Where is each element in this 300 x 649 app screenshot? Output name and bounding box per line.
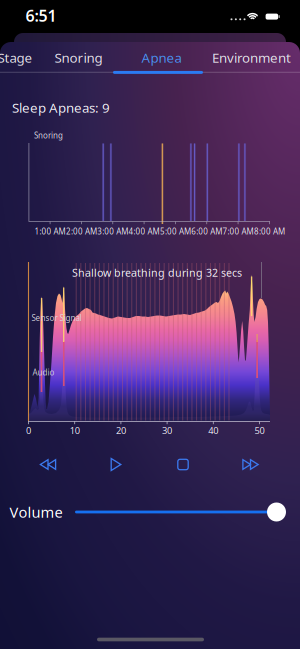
staticText: 2:00 AM xyxy=(66,226,97,237)
staticText: Snoring xyxy=(34,130,63,141)
button[interactable]: Fast Forward xyxy=(243,460,258,469)
staticText: 40 xyxy=(208,424,218,437)
staticText: 3:00 AM xyxy=(97,226,128,237)
button[interactable]: Play xyxy=(111,458,121,470)
staticText: 4:00 AM xyxy=(129,226,160,237)
button[interactable]: Rewind xyxy=(40,460,56,469)
staticText: Sensor Signal xyxy=(31,313,81,323)
staticText: Stage xyxy=(0,49,32,66)
staticText: 6:51 xyxy=(25,5,56,26)
staticText: 8:00 AM xyxy=(254,226,285,237)
staticText: 6:00 AM xyxy=(191,226,222,237)
button[interactable]: Snoring xyxy=(54,49,102,66)
staticText: 5:00 AM xyxy=(160,226,191,237)
staticText: Shallow breathing during 32 secs xyxy=(72,265,242,280)
staticText: 7:00 AM xyxy=(223,226,254,237)
staticText: Snoring xyxy=(54,49,102,66)
staticText: 0 xyxy=(26,424,31,437)
button[interactable]: Stage xyxy=(0,49,32,66)
staticText: Apnea xyxy=(141,49,181,66)
staticText: Volume xyxy=(9,502,62,522)
staticText: 30 xyxy=(162,424,172,437)
staticText: 1:00 AM xyxy=(35,226,66,237)
staticText: Environment xyxy=(212,49,291,66)
staticText: 10 xyxy=(70,424,80,437)
button[interactable]: Apnea xyxy=(141,49,181,66)
staticText: Sleep Apneas: 9 xyxy=(12,99,110,116)
button[interactable]: Stop xyxy=(178,459,188,470)
button[interactable]: Environment xyxy=(212,49,291,66)
staticText: 50 xyxy=(254,424,264,437)
button[interactable]: Volume xyxy=(75,500,286,524)
staticText: 20 xyxy=(116,424,126,437)
staticText: Audio xyxy=(32,367,54,378)
